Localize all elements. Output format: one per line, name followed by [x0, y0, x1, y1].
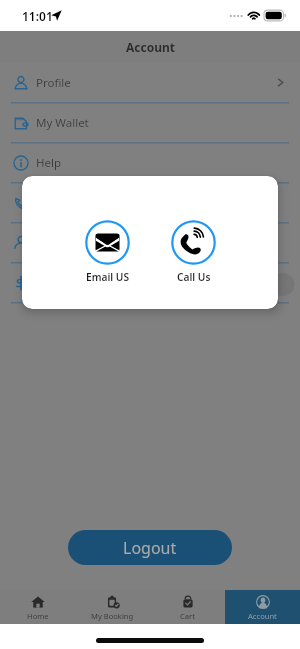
button[interactable]: Currency	[0, 263, 300, 303]
button[interactable]: Profile	[0, 63, 300, 103]
staticText: My Wallet	[36, 115, 89, 131]
button[interactable]: Email US	[85, 220, 130, 284]
button[interactable]: Contact Us	[0, 183, 300, 223]
staticText: Account	[126, 39, 175, 55]
staticText: My Booking	[91, 611, 134, 621]
staticText: Account	[248, 611, 277, 621]
staticText: Cart	[180, 611, 195, 621]
button[interactable]: My Booking	[75, 590, 150, 624]
button[interactable]: Home	[0, 590, 75, 624]
button[interactable]: Logout	[68, 530, 232, 565]
staticText: About Us	[36, 235, 86, 251]
staticText: Profile	[36, 75, 71, 91]
staticText: Home	[27, 611, 49, 621]
button[interactable]: Cart	[150, 590, 225, 624]
button[interactable]: My Wallet	[0, 103, 300, 143]
button[interactable]: Help	[0, 143, 300, 183]
staticText: 11:01	[22, 8, 53, 24]
button[interactable]: Call Us	[171, 220, 216, 284]
staticText: Call Us	[177, 270, 211, 284]
button[interactable]: About Us	[0, 223, 300, 263]
button[interactable]: Account	[225, 590, 300, 624]
staticText: Help	[36, 155, 62, 171]
staticText: Logout	[123, 537, 177, 559]
staticText: Email US	[86, 270, 130, 284]
